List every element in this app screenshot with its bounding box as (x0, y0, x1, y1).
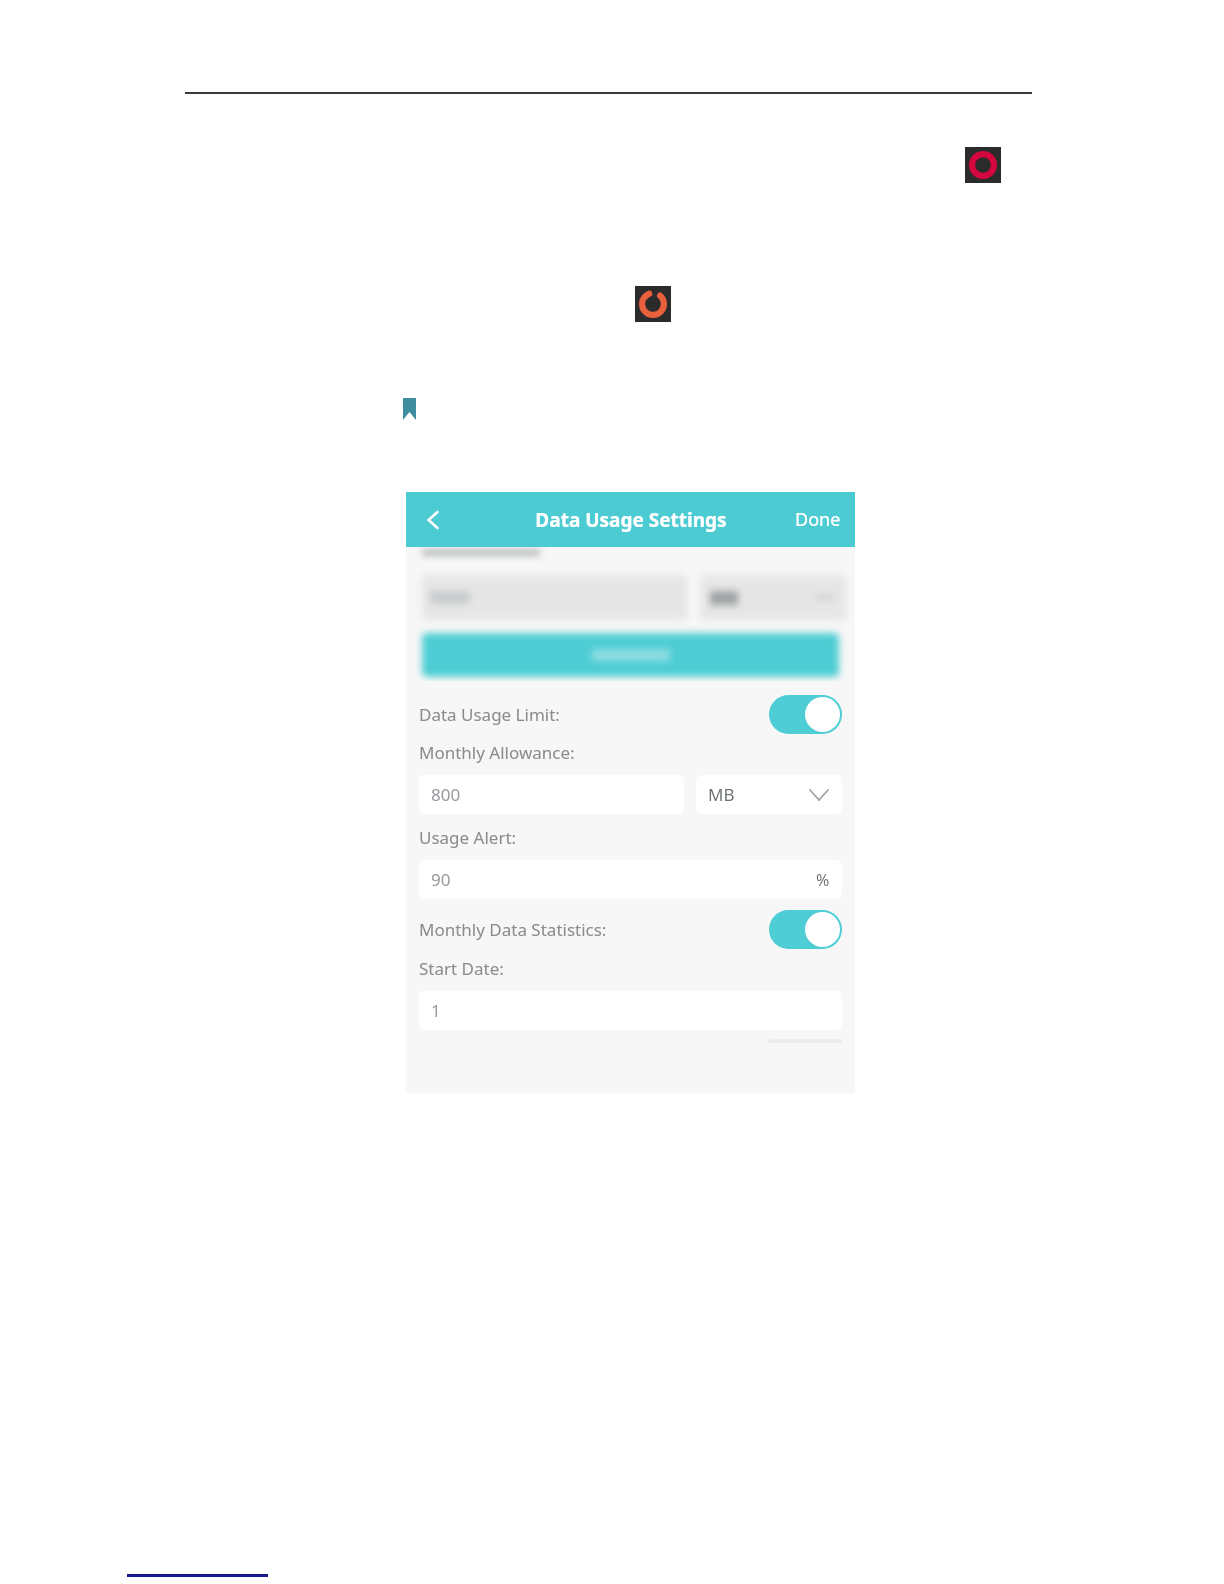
button[interactable]: Toggle on (769, 910, 842, 949)
staticText: 90 (431, 868, 451, 891)
button[interactable]: Monthly Data Statistics: (419, 905, 842, 953)
staticText: 1 (431, 999, 441, 1022)
staticText: Monthly Allowance: (419, 741, 575, 764)
other: Status indicator icon (635, 286, 671, 322)
staticText: MB (708, 783, 735, 806)
button[interactable]: 1 (419, 991, 842, 1030)
staticText: Start Date: (419, 957, 504, 980)
staticText: Data Usage Limit: (419, 703, 769, 726)
staticText: % (816, 869, 830, 891)
staticText: Data Usage Settings (535, 507, 727, 533)
button[interactable]: Done (781, 497, 855, 542)
button[interactable]: 800 (419, 775, 684, 814)
staticText: 800 (431, 783, 461, 806)
button[interactable]: 90 (419, 860, 842, 899)
button[interactable]: MB (696, 775, 842, 814)
other: Status indicator icon (965, 147, 1001, 183)
button[interactable]: Toggle on (769, 695, 842, 734)
button[interactable]: Data Usage Limit: (419, 690, 842, 738)
button[interactable]: Back (414, 500, 454, 540)
staticText: Usage Alert: (419, 826, 517, 849)
staticText: Done (795, 507, 841, 532)
staticText: Monthly Data Statistics: (419, 918, 769, 941)
